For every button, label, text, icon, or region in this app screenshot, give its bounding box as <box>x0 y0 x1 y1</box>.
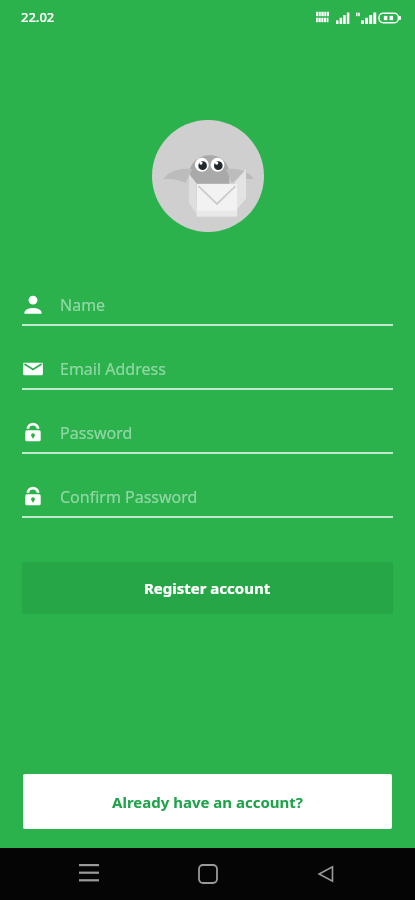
staticText: Confirm Password <box>60 486 198 508</box>
button[interactable]: Email Address <box>22 352 393 390</box>
button[interactable]: Register account <box>22 562 393 614</box>
button[interactable]: Password <box>22 416 393 454</box>
staticText: Name <box>60 294 106 316</box>
button[interactable]: Name <box>22 288 393 326</box>
button[interactable]: Back <box>296 848 356 900</box>
button[interactable]: Home <box>178 848 238 900</box>
staticText: Email Address <box>60 358 166 380</box>
staticText: Password <box>60 422 133 444</box>
button[interactable]: Recent apps <box>59 848 119 900</box>
staticText: Register account <box>144 578 271 598</box>
button[interactable]: Already have an account? <box>23 774 392 829</box>
button[interactable]: Confirm Password <box>22 480 393 518</box>
staticText: 22.02 <box>21 8 55 26</box>
staticText: Already have an account? <box>112 792 303 812</box>
